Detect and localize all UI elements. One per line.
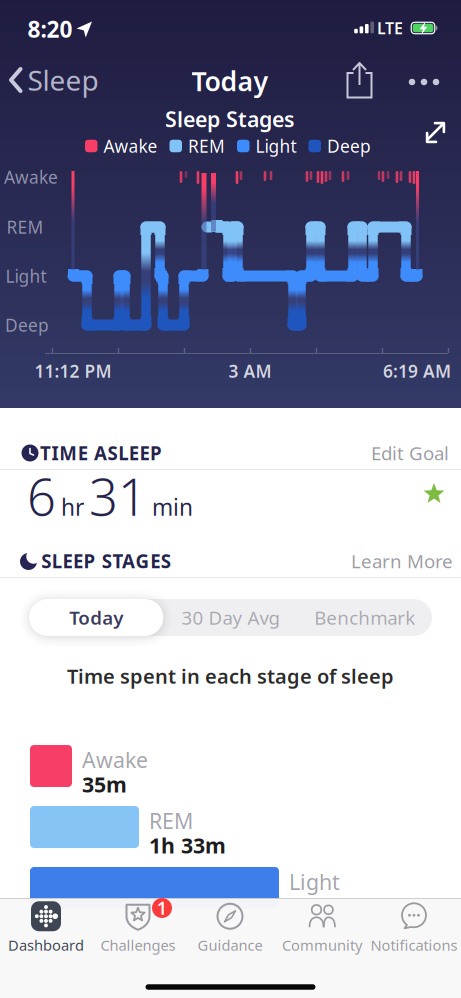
staticText: 3 AM: [228, 359, 271, 382]
staticText: 1: [157, 896, 167, 919]
staticText: Learn More: [351, 549, 453, 573]
staticText: 31: [89, 462, 147, 530]
staticText: LTE: [377, 17, 403, 39]
staticText: Today: [69, 605, 123, 630]
button[interactable]: Learn More: [351, 549, 453, 573]
button[interactable]: Challenges: [100, 901, 175, 955]
staticText: Sleep: [27, 61, 98, 99]
staticText: TIME ASLEEP: [40, 441, 162, 465]
staticText: REM: [6, 215, 43, 238]
staticText: SLEEP STAGES: [41, 549, 171, 573]
staticText: Sleep Stages: [165, 105, 295, 133]
staticText: Community: [282, 935, 362, 955]
staticText: 30 Day Avg: [181, 605, 279, 630]
staticText: Deep: [5, 313, 49, 336]
button[interactable]: Guidance: [197, 901, 262, 955]
button[interactable]: Notifications: [370, 901, 457, 955]
staticText: Edit Goal: [371, 441, 449, 465]
button[interactable]: Dashboard: [8, 901, 84, 955]
staticText: Time spent in each stage of sleep: [67, 663, 394, 689]
staticText: Today: [191, 63, 268, 99]
staticText: 6:19 AM: [383, 359, 451, 382]
staticText: 35m: [82, 770, 127, 798]
staticText: 8:20: [27, 14, 72, 44]
staticText: hr: [61, 492, 84, 522]
button[interactable]: 30 Day Avg: [163, 599, 298, 636]
button[interactable]: More: [409, 79, 439, 85]
button[interactable]: Benchmark: [298, 599, 432, 636]
staticText: Guidance: [197, 935, 262, 955]
staticText: Dashboard: [8, 935, 84, 955]
staticText: REM: [149, 807, 193, 835]
button[interactable]: Today: [29, 599, 163, 636]
staticText: Awake: [82, 746, 148, 774]
staticText: Light: [5, 264, 46, 287]
staticText: Light: [255, 134, 296, 157]
staticText: Deep: [327, 134, 371, 157]
staticText: Light: [289, 868, 340, 896]
staticText: 11:12 PM: [34, 359, 111, 382]
staticText: Awake: [4, 165, 58, 188]
staticText: Challenges: [100, 935, 175, 955]
button[interactable]: Share: [344, 61, 374, 99]
button[interactable]: Expand chart: [423, 120, 447, 144]
staticText: REM: [188, 134, 225, 157]
staticText: 1h 33m: [149, 831, 226, 859]
staticText: min: [152, 492, 193, 522]
staticText: 6: [27, 462, 56, 530]
button[interactable]: Community: [282, 901, 362, 955]
button[interactable]: Sleep: [9, 61, 98, 99]
staticText: Notifications: [370, 935, 457, 955]
staticText: Benchmark: [314, 605, 415, 630]
staticText: Awake: [103, 134, 157, 157]
button[interactable]: Edit Goal: [371, 441, 449, 465]
